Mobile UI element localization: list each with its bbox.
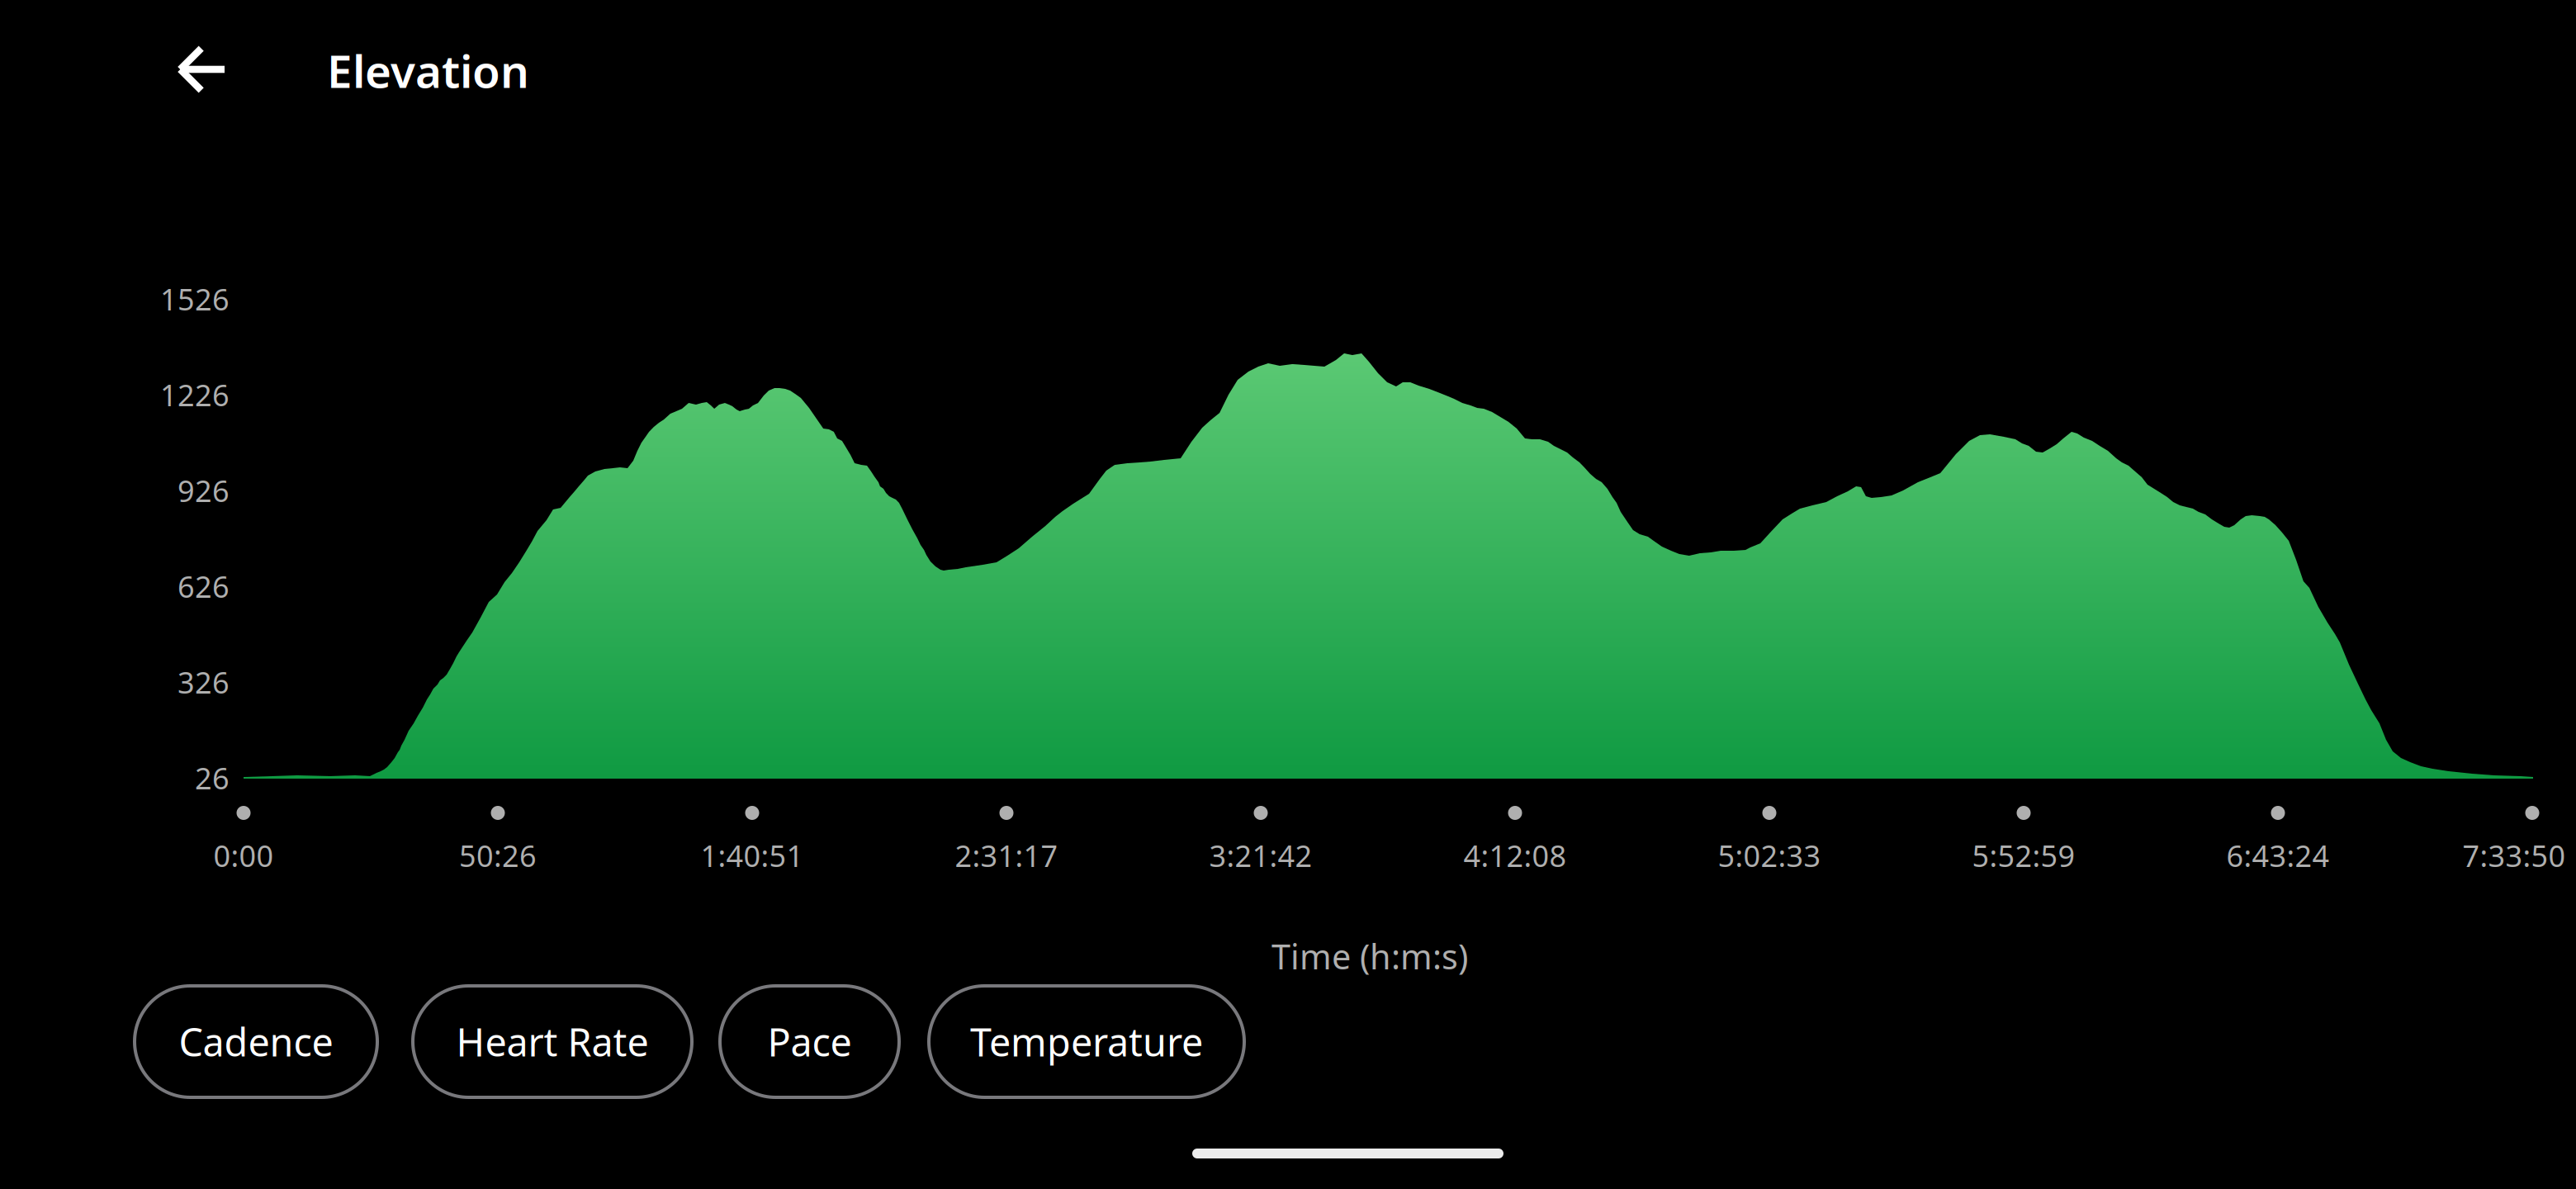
staticText: 926 bbox=[178, 471, 230, 510]
staticText: Heart Rate bbox=[456, 1016, 649, 1067]
button[interactable]: Back bbox=[155, 26, 246, 113]
staticText: 1:40:51 bbox=[701, 836, 804, 875]
staticText: 4:12:08 bbox=[1463, 836, 1567, 875]
button[interactable]: Cadence bbox=[135, 986, 377, 1097]
staticText: Temperature bbox=[970, 1016, 1203, 1067]
button[interactable]: Pace bbox=[720, 986, 899, 1097]
staticText: Cadence bbox=[179, 1016, 333, 1067]
staticText: 5:02:33 bbox=[1718, 836, 1821, 875]
staticText: 7:33:50 bbox=[2462, 836, 2566, 875]
staticText: 1226 bbox=[160, 375, 230, 414]
staticText: 3:21:42 bbox=[1209, 836, 1312, 875]
staticText: Time (h:m:s) bbox=[1271, 934, 1468, 979]
staticText: 1526 bbox=[160, 279, 230, 319]
button[interactable]: Temperature bbox=[929, 986, 1244, 1097]
staticText: 326 bbox=[178, 662, 230, 702]
staticText: 6:43:24 bbox=[2226, 836, 2330, 875]
staticText: Pace bbox=[767, 1016, 852, 1067]
staticText: 2:31:17 bbox=[955, 836, 1058, 875]
staticText: 0:00 bbox=[213, 836, 274, 875]
staticText: 626 bbox=[178, 567, 230, 606]
staticText: Elevation bbox=[327, 40, 529, 100]
staticText: 26 bbox=[195, 758, 230, 798]
button[interactable]: Heart Rate bbox=[413, 986, 692, 1097]
staticText: 5:52:59 bbox=[1972, 836, 2075, 875]
staticText: 50:26 bbox=[459, 836, 537, 875]
